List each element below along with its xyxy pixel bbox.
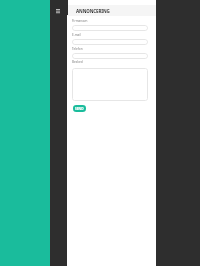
- staticText: Telefon: [72, 47, 83, 51]
- button[interactable]: [72, 53, 148, 59]
- button[interactable]: Menu: [54, 7, 62, 15]
- button[interactable]: SEND: [73, 105, 86, 112]
- staticText: E-mail: [72, 33, 81, 37]
- button[interactable]: [72, 25, 148, 31]
- button[interactable]: [72, 68, 148, 101]
- staticText: Firmanavn: [72, 19, 88, 23]
- staticText: ANNONCERING: [76, 8, 110, 14]
- staticText: Besked: [72, 60, 83, 64]
- staticText: SEND: [75, 107, 84, 111]
- button[interactable]: [72, 39, 148, 45]
